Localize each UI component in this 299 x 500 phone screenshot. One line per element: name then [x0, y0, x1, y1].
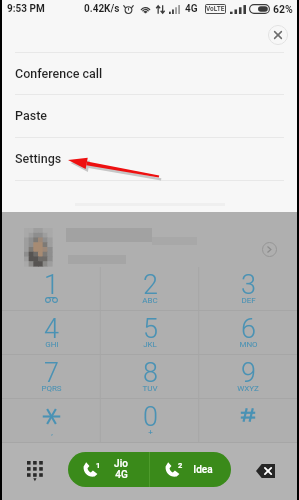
staticText: 4: [44, 313, 59, 345]
button[interactable]: 5: [101, 311, 199, 355]
button[interactable]: 1: [2, 267, 101, 311]
staticText: 1: [96, 461, 101, 470]
staticText: 0: [143, 401, 158, 433]
button[interactable]: 1: [68, 452, 149, 487]
staticText: 2: [143, 269, 158, 301]
button[interactable]: 0: [101, 399, 199, 443]
staticText: 1: [44, 269, 59, 301]
staticText: ,: [51, 428, 53, 437]
button[interactable]: [199, 399, 297, 443]
staticText: VoLTE: [206, 5, 225, 13]
staticText: 6: [241, 313, 256, 345]
button[interactable]: Backspace: [250, 456, 280, 486]
button[interactable]: Conference call: [2, 52, 297, 95]
staticText: ABC: [142, 296, 158, 305]
staticText: MNO: [239, 340, 258, 349]
staticText: 9:53 PM: [7, 3, 45, 15]
staticText: 5: [143, 313, 158, 345]
button[interactable]: Show keypad: [19, 452, 51, 484]
staticText: +: [148, 428, 153, 437]
staticText: 62%: [273, 3, 293, 15]
staticText: PQRS: [41, 384, 62, 393]
button[interactable]: Expand contact: [260, 240, 279, 259]
staticText: Conference call: [15, 66, 103, 81]
staticText: 4G: [185, 3, 198, 15]
button[interactable]: Settings: [2, 137, 297, 180]
staticText: Settings: [15, 151, 62, 166]
button[interactable]: 2: [101, 267, 199, 311]
button[interactable]: 2: [150, 452, 231, 487]
staticText: 3: [241, 269, 256, 301]
staticText: 4G: [115, 469, 128, 481]
staticText: Jio: [114, 458, 128, 470]
button[interactable]: Paste: [2, 94, 297, 137]
staticText: WXYZ: [237, 384, 259, 393]
staticText: 8: [143, 357, 158, 389]
button[interactable]: 4: [2, 311, 101, 355]
button[interactable]: ,: [2, 399, 101, 443]
staticText: GHI: [45, 340, 59, 349]
staticText: JKL: [143, 340, 157, 349]
staticText: Idea: [193, 464, 213, 476]
button[interactable]: Close: [264, 21, 291, 48]
button[interactable]: 6: [199, 311, 297, 355]
staticText: 7: [44, 357, 59, 389]
staticText: Paste: [15, 108, 48, 123]
staticText: DEF: [241, 296, 256, 305]
staticText: TUV: [142, 384, 158, 393]
button[interactable]: 9: [199, 355, 297, 399]
staticText: 2: [178, 461, 183, 470]
button[interactable]: 3: [199, 267, 297, 311]
staticText: 9: [241, 357, 256, 389]
button[interactable]: 8: [101, 355, 199, 399]
button[interactable]: 7: [2, 355, 101, 399]
staticText: 0.42K/s: [84, 3, 120, 15]
